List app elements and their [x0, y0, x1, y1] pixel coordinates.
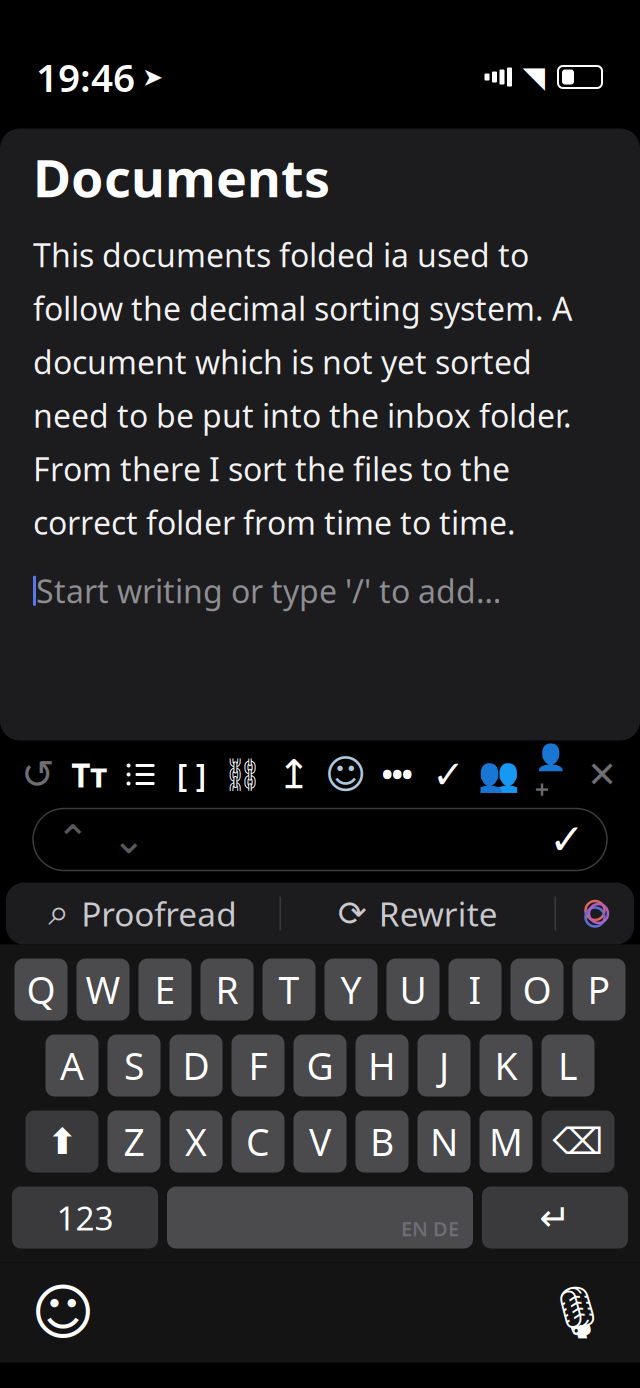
button[interactable]: ⬆: [25, 1110, 98, 1172]
button[interactable]: Close: [582, 746, 622, 802]
button[interactable]: O: [510, 958, 563, 1020]
button[interactable]: H: [355, 1034, 408, 1096]
button[interactable]: Confirm: [539, 811, 595, 867]
button[interactable]: C: [231, 1110, 284, 1172]
button[interactable]: G: [293, 1034, 346, 1096]
staticText: T: [278, 965, 299, 1014]
staticText: ➤: [142, 63, 163, 91]
button[interactable]: Next: [101, 811, 157, 867]
button[interactable]: Y: [324, 958, 377, 1020]
staticText: ↵: [539, 1196, 570, 1239]
button[interactable]: B: [355, 1110, 408, 1172]
button[interactable]: E: [138, 958, 191, 1020]
button[interactable]: X: [169, 1110, 222, 1172]
button[interactable]: Link: [223, 746, 263, 802]
staticText: G: [306, 1041, 333, 1090]
staticText: ✓: [432, 753, 464, 796]
staticText: U: [399, 965, 426, 1014]
staticText: Rewrite: [379, 891, 498, 936]
button[interactable]: Collaborators: [479, 746, 519, 802]
staticText: I: [468, 965, 481, 1014]
staticText: Documents: [33, 142, 330, 212]
staticText: Start writing or type '/' to add…: [36, 569, 501, 612]
staticText: Tт: [71, 752, 107, 797]
button[interactable]: M: [479, 1110, 532, 1172]
staticText: V: [309, 1117, 331, 1166]
button[interactable]: W: [76, 958, 129, 1020]
button[interactable]: F: [231, 1034, 284, 1096]
staticText: ⛓: [223, 756, 264, 793]
button[interactable]: Brackets: [172, 746, 212, 802]
button[interactable]: 123: [12, 1186, 158, 1248]
button[interactable]: Apple Intelligence: [556, 882, 634, 944]
staticText: Z: [123, 1117, 144, 1166]
staticText: Q: [26, 965, 55, 1014]
button[interactable]: More: [377, 746, 417, 802]
button[interactable]: T: [262, 958, 315, 1020]
staticText: J: [439, 1041, 449, 1090]
button[interactable]: Q: [14, 958, 67, 1020]
staticText: C: [246, 1117, 270, 1166]
button[interactable]: Done: [428, 746, 468, 802]
staticText: ◥: [522, 60, 545, 94]
button[interactable]: V: [293, 1110, 346, 1172]
button[interactable]: Space: [167, 1186, 473, 1248]
button[interactable]: ⌕: [6, 882, 279, 944]
staticText: M: [489, 1117, 523, 1166]
staticText: •••: [382, 757, 412, 792]
staticText: ⌃: [56, 817, 90, 862]
button[interactable]: J: [417, 1034, 470, 1096]
staticText: 🎙: [545, 1284, 609, 1341]
staticText: N: [430, 1117, 458, 1166]
button[interactable]: Emoji: [326, 746, 366, 802]
button[interactable]: I: [448, 958, 501, 1020]
button[interactable]: Z: [107, 1110, 160, 1172]
staticText: F: [248, 1041, 267, 1090]
staticText: 👤+: [535, 743, 567, 806]
staticText: EN DE: [401, 1215, 459, 1242]
staticText: ✕: [587, 754, 617, 795]
button[interactable]: Dictation: [545, 1280, 609, 1344]
staticText: 123: [56, 1195, 113, 1240]
staticText: This documents folded ia used to follow …: [33, 234, 572, 544]
button[interactable]: ⌫: [541, 1110, 614, 1172]
staticText: P: [587, 965, 610, 1014]
button[interactable]: K: [479, 1034, 532, 1096]
staticText: ⌕: [48, 895, 69, 932]
button[interactable]: Share: [274, 746, 314, 802]
staticText: ⬆: [47, 1121, 77, 1162]
button[interactable]: D: [169, 1034, 222, 1096]
button[interactable]: S: [107, 1034, 160, 1096]
button[interactable]: A: [45, 1034, 98, 1096]
button[interactable]: P: [572, 958, 625, 1020]
button[interactable]: Add person: [531, 746, 571, 802]
staticText: ⌄: [112, 817, 146, 862]
button[interactable]: Previous: [45, 811, 101, 867]
staticText: X: [185, 1117, 207, 1166]
button[interactable]: List: [120, 746, 160, 802]
button[interactable]: Undo: [18, 746, 58, 802]
button[interactable]: Emoji keyboard: [31, 1280, 95, 1344]
staticText: 19:46: [36, 51, 135, 103]
staticText: ☺: [31, 1278, 95, 1347]
button[interactable]: R: [200, 958, 253, 1020]
button[interactable]: ⟳: [281, 882, 554, 944]
staticText: W: [85, 965, 120, 1014]
staticText: 👥: [478, 755, 520, 794]
staticText: S: [124, 1041, 144, 1090]
staticText: [ ]: [177, 753, 207, 796]
button[interactable]: L: [541, 1034, 594, 1096]
staticText: R: [215, 965, 238, 1014]
button[interactable]: U: [386, 958, 439, 1020]
button[interactable]: Text format: [69, 746, 109, 802]
staticText: L: [558, 1041, 578, 1090]
staticText: ✓: [549, 815, 585, 864]
button[interactable]: N: [417, 1110, 470, 1172]
button[interactable]: ↵: [482, 1186, 628, 1248]
staticText: O: [522, 965, 551, 1014]
staticText: ⌫: [552, 1121, 603, 1162]
staticText: Y: [340, 965, 361, 1014]
staticText: H: [368, 1041, 396, 1090]
staticText: D: [182, 1041, 209, 1090]
staticText: ☺: [325, 752, 367, 797]
